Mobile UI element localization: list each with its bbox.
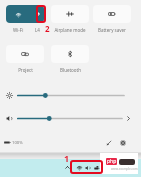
staticText: 1 <box>64 152 70 164</box>
button[interactable] <box>51 45 89 63</box>
staticText: 100% <box>12 140 23 146</box>
button[interactable]: php <box>100 153 138 174</box>
button[interactable] <box>93 5 131 23</box>
staticText: 2 <box>45 23 50 34</box>
staticText: www.example.com <box>111 167 138 171</box>
button[interactable]: Settings <box>117 137 129 149</box>
button[interactable]: Manage Wi-Fi connections <box>31 5 44 23</box>
staticText: Airplane mode <box>54 27 86 33</box>
button[interactable]: Edit quick settings <box>103 137 115 149</box>
button[interactable]: Network, sound, battery <box>76 164 100 171</box>
button[interactable]: 100% <box>4 139 23 146</box>
button[interactable]: More volume settings <box>0 113 141 124</box>
button[interactable] <box>6 45 44 63</box>
staticText: php <box>107 158 117 165</box>
button[interactable] <box>51 5 89 23</box>
button[interactable]: More volume settings <box>124 114 133 123</box>
staticText: Battery saver <box>98 27 126 33</box>
staticText: Bluetooth <box>60 67 81 73</box>
staticText: Wi-Fi <box>13 27 24 33</box>
button[interactable] <box>0 90 141 101</box>
button[interactable]: Show hidden icons <box>63 163 72 172</box>
button[interactable]: Wi-Fi <box>6 5 31 23</box>
staticText: L4 <box>35 27 40 33</box>
staticText: Project <box>18 67 33 73</box>
